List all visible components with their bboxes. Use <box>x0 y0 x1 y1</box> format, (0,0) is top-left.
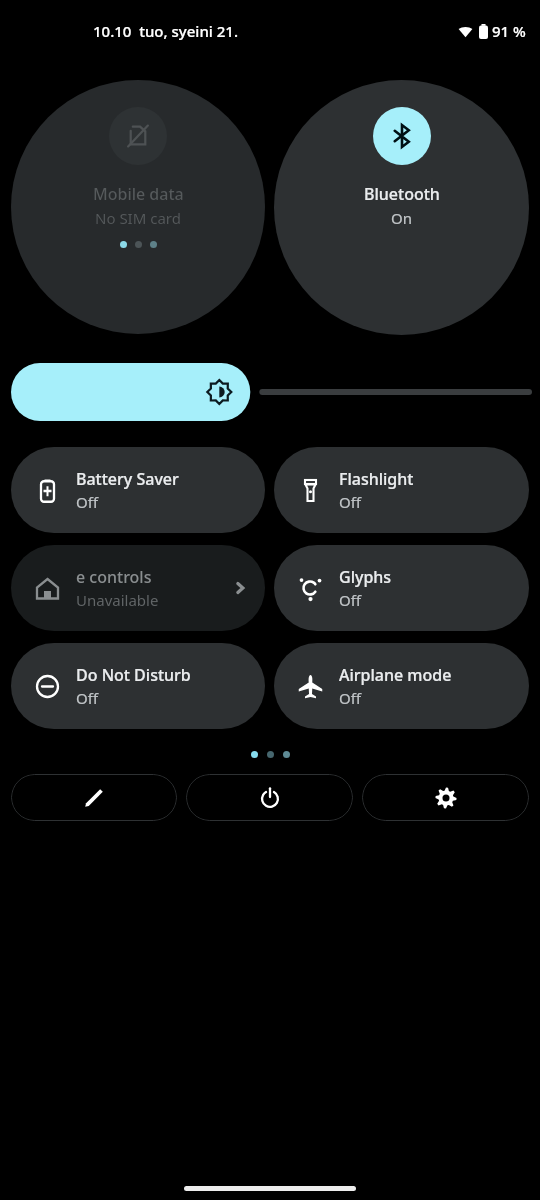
staticText: Off <box>339 492 362 512</box>
button[interactable]: Battery Saver <box>11 447 265 533</box>
button[interactable]: Brightness <box>11 363 529 421</box>
button[interactable]: Mobile data <box>11 80 265 334</box>
button[interactable]: Airplane mode <box>274 643 529 729</box>
staticText: Off <box>339 688 362 708</box>
staticText: Airplane mode <box>339 664 452 686</box>
staticText: 91 % <box>492 21 526 41</box>
button[interactable]: Glyphs <box>274 545 529 631</box>
staticText: Off <box>76 688 99 708</box>
button[interactable]: Bluetooth <box>274 80 529 335</box>
staticText: Do Not Disturb <box>76 664 191 686</box>
staticText: No SIM card <box>95 208 181 228</box>
staticText: 10.10 tuo, syeini 21. <box>93 21 238 41</box>
button[interactable]: Settings <box>362 774 529 821</box>
staticText: Off <box>339 590 362 610</box>
button[interactable]: Do Not Disturb <box>11 643 265 729</box>
button[interactable]: Edit tiles <box>11 774 177 821</box>
staticText: e controls <box>76 566 152 588</box>
staticText: Glyphs <box>339 566 392 588</box>
staticText: Bluetooth <box>364 183 440 205</box>
staticText: On <box>391 208 412 228</box>
staticText: Battery Saver <box>76 468 179 490</box>
button[interactable]: Flashlight <box>274 447 529 533</box>
staticText: Flashlight <box>339 468 414 490</box>
button[interactable]: e controls <box>11 545 265 631</box>
button[interactable]: Power <box>186 774 353 821</box>
staticText: Off <box>76 492 99 512</box>
staticText: Mobile data <box>93 183 184 205</box>
staticText: Unavailable <box>76 590 159 610</box>
